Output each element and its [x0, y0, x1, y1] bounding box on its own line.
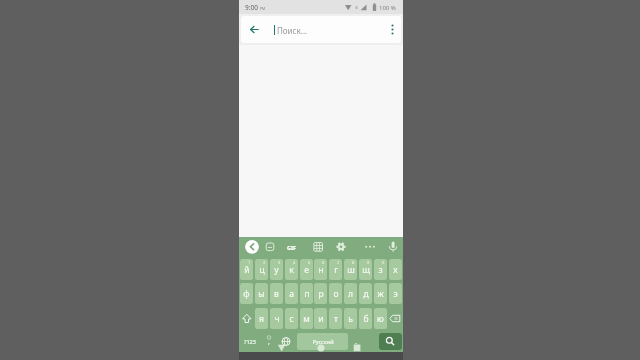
button[interactable]: м [300, 308, 313, 329]
staticText: 9:00 [245, 3, 258, 12]
staticText: п [304, 288, 310, 300]
button[interactable]: . [351, 333, 361, 350]
staticText: ю [377, 313, 384, 325]
staticText: , [268, 337, 270, 347]
button[interactable]: ю [374, 308, 387, 329]
button[interactable]: л [344, 283, 357, 304]
button[interactable]: ь [344, 308, 357, 329]
staticText: х [393, 264, 398, 276]
button[interactable]: а [285, 283, 298, 304]
staticText: р [318, 288, 324, 300]
button[interactable] [279, 333, 293, 350]
staticText: э [393, 288, 398, 300]
staticText: и [318, 313, 324, 325]
button[interactable] [263, 241, 278, 257]
staticText: я [259, 313, 264, 325]
button[interactable]: т [329, 308, 342, 329]
button[interactable]: , [263, 333, 275, 350]
staticText: 6 [322, 260, 325, 265]
button[interactable]: ф [240, 283, 253, 304]
staticText: к [289, 264, 294, 276]
staticText: ч [274, 313, 280, 325]
staticText: ш [347, 264, 355, 276]
staticText: 0 [382, 260, 385, 265]
staticText: 3 [278, 260, 281, 265]
staticText: 2 [263, 260, 266, 265]
button[interactable]: х [389, 259, 402, 280]
button[interactable]: к [285, 259, 298, 280]
button[interactable] [385, 241, 401, 257]
staticText: 100 % [379, 4, 396, 12]
staticText: ы [258, 288, 265, 300]
button[interactable]: в [270, 283, 283, 304]
button[interactable]: г [329, 259, 342, 280]
button[interactable] [240, 308, 253, 329]
button[interactable] [389, 308, 402, 329]
staticText: 5 [308, 260, 311, 265]
button[interactable] [362, 241, 378, 257]
button[interactable]: ш [344, 259, 357, 280]
button[interactable]: е [300, 259, 313, 280]
staticText: д [363, 288, 369, 300]
staticText: в [274, 288, 279, 300]
button[interactable]: р [314, 283, 327, 304]
staticText: г [334, 264, 338, 276]
button[interactable]: б [359, 308, 372, 329]
button[interactable]: н [314, 259, 327, 280]
staticText: Русский [312, 338, 334, 345]
staticText: 8 [352, 260, 355, 265]
staticText: GIF [287, 244, 297, 251]
staticText: й [244, 264, 250, 276]
staticText: е [304, 264, 309, 276]
button[interactable] [388, 23, 397, 36]
button[interactable]: с [285, 308, 298, 329]
staticText: PM [260, 6, 266, 11]
button[interactable]: Русский [297, 333, 348, 350]
button[interactable]: й [240, 259, 253, 280]
button[interactable]: ч [270, 308, 283, 329]
staticText: ц [259, 264, 265, 276]
button[interactable] [310, 241, 326, 257]
button[interactable]: о [329, 283, 342, 304]
staticText: ?123 [244, 338, 256, 345]
button[interactable] [379, 333, 402, 350]
staticText: щ [362, 264, 370, 276]
staticText: л [348, 288, 353, 300]
button[interactable]: и [314, 308, 327, 329]
button[interactable] [333, 241, 349, 257]
staticText: у [274, 264, 279, 276]
button[interactable]: щ [359, 259, 372, 280]
button[interactable]: Поиск... [241, 16, 401, 43]
staticText: ж [377, 288, 384, 300]
staticText: м [303, 313, 310, 325]
button[interactable]: ж [374, 283, 387, 304]
staticText: з [378, 264, 383, 276]
staticText: . [355, 337, 357, 347]
button[interactable]: з [374, 259, 387, 280]
button[interactable]: п [300, 283, 313, 304]
button[interactable]: ц [255, 259, 268, 280]
staticText: 1 [248, 260, 251, 265]
staticText: с [289, 313, 294, 325]
button[interactable]: д [359, 283, 372, 304]
staticText: о [333, 288, 339, 300]
button[interactable]: у [270, 259, 283, 280]
staticText: Поиск... [277, 25, 308, 36]
staticText: ф [243, 288, 250, 300]
staticText: н [318, 264, 324, 276]
staticText: т [334, 313, 338, 325]
button[interactable]: я [255, 308, 268, 329]
staticText: 7 [337, 260, 340, 265]
button[interactable] [250, 25, 260, 34]
staticText: а [289, 288, 294, 300]
staticText: б [363, 313, 369, 325]
button[interactable]: ?123 [240, 333, 260, 350]
button[interactable] [283, 241, 301, 257]
button[interactable]: э [389, 283, 402, 304]
staticText: 9 [367, 260, 370, 265]
button[interactable] [244, 241, 260, 257]
button[interactable]: ы [255, 283, 268, 304]
staticText: ь [348, 313, 353, 325]
staticText: 4 [293, 260, 296, 265]
